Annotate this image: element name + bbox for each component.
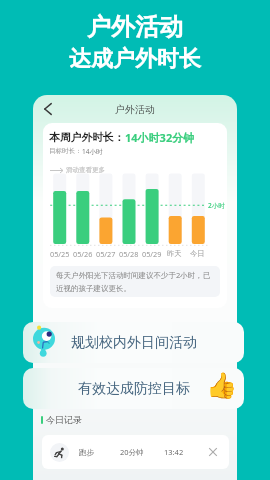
staticText: 20分钟 xyxy=(120,447,144,457)
staticText: 14小时32分钟 xyxy=(125,130,195,145)
button[interactable]: 规划校内外日间活动 xyxy=(23,322,244,363)
button[interactable]: Delete record xyxy=(206,445,220,459)
staticText: 今日记录 xyxy=(46,414,82,425)
button[interactable]: 跑步 xyxy=(42,435,229,469)
staticText: 05/29 xyxy=(142,249,162,259)
staticText: 户外活动 xyxy=(87,12,183,42)
staticText: 每天户外阳光下活动时间建议不少于2小时，已近视的孩子建议更长。 xyxy=(56,270,214,293)
staticText: 跑步 xyxy=(79,448,94,457)
button[interactable]: 有效达成防控目标 xyxy=(23,368,244,409)
staticText: 昨天 xyxy=(167,249,182,258)
staticText: 本周户外时长： xyxy=(49,131,125,145)
staticText: 13:42 xyxy=(164,447,184,457)
staticText: 05/27 xyxy=(96,249,116,259)
staticText: 05/28 xyxy=(119,249,139,259)
staticText: 今日 xyxy=(190,249,205,258)
staticText: 滑动查看更多 xyxy=(66,166,105,174)
staticText: 05/25 xyxy=(50,249,70,259)
staticText: 14小时 xyxy=(82,147,103,156)
staticText: 有效达成防控目标 xyxy=(78,380,190,398)
staticText: 达成户外时长 xyxy=(69,45,201,73)
staticText: 规划校内外日间活动 xyxy=(71,334,197,352)
staticText: 👍 xyxy=(206,371,238,400)
staticText: 05/26 xyxy=(73,249,93,259)
staticText: 目标时长： xyxy=(49,147,82,155)
button[interactable]: Back xyxy=(38,100,56,118)
staticText: 2小时 xyxy=(208,201,225,210)
staticText: 户外活动 xyxy=(115,103,155,116)
